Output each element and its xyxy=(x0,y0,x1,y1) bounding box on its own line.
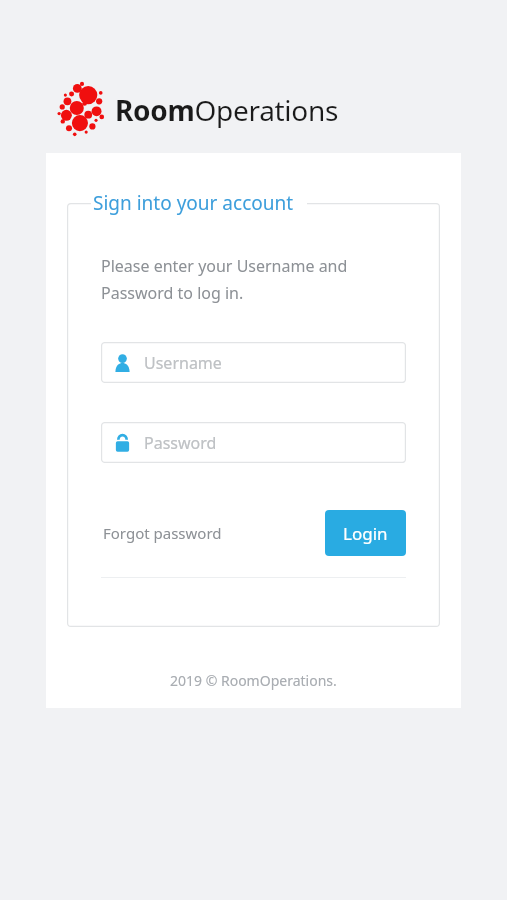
staticText: Please enter your Username and xyxy=(101,255,348,277)
staticText: Sign into your account xyxy=(93,190,294,216)
staticText: RoomOperations xyxy=(115,91,339,129)
staticText: Login xyxy=(343,522,388,545)
staticText: Password xyxy=(144,432,217,454)
button[interactable]: Username xyxy=(101,342,406,383)
staticText: Forgot password xyxy=(103,523,222,543)
staticText: Username xyxy=(144,352,222,374)
staticText: 2019 © RoomOperations. xyxy=(170,671,337,690)
button[interactable]: Forgot password xyxy=(101,517,224,549)
button[interactable]: Login xyxy=(325,510,406,556)
button[interactable]: Password xyxy=(101,422,406,463)
staticText: Password to log in. xyxy=(101,282,244,304)
